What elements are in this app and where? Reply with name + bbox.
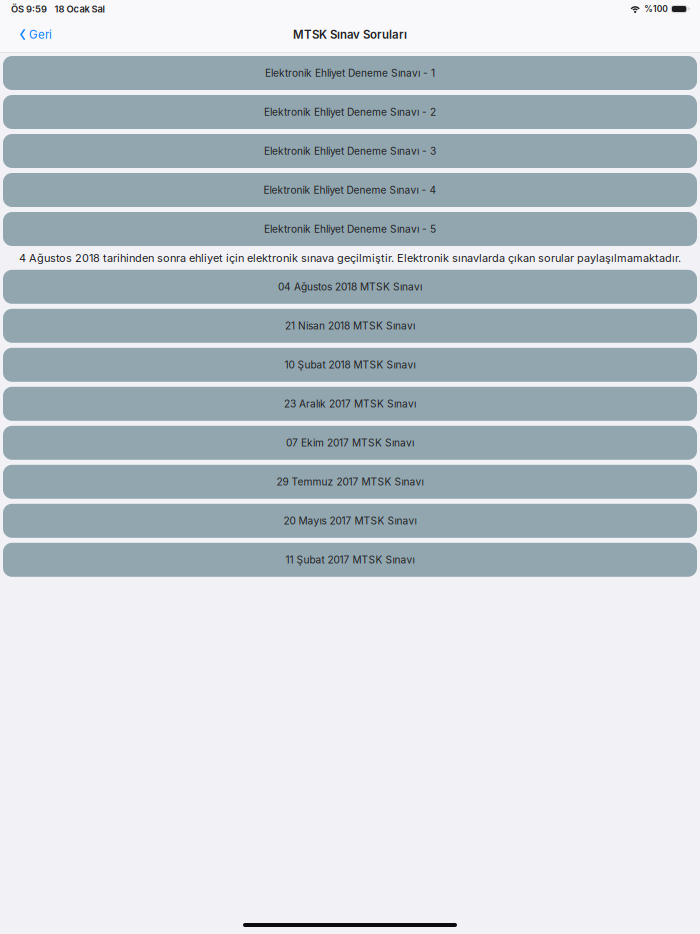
staticText: 18 Ocak Sal — [54, 3, 104, 15]
button[interactable]: 11 Şubat 2017 MTSK Sınavı — [3, 543, 697, 577]
button[interactable]: 21 Nisan 2018 MTSK Sınavı — [3, 309, 697, 343]
staticText: 21 Nisan 2018 MTSK Sınavı — [285, 320, 415, 332]
button[interactable]: Elektronik Ehliyet Deneme Sınavı - 5 — [3, 212, 697, 246]
button[interactable]: 29 Temmuz 2017 MTSK Sınavı — [3, 465, 697, 499]
button[interactable]: Geri — [10, 23, 62, 48]
staticText: %100 — [644, 4, 668, 14]
button[interactable]: Elektronik Ehliyet Deneme Sınavı - 1 — [3, 56, 697, 90]
button[interactable]: Elektronik Ehliyet Deneme Sınavı - 2 — [3, 95, 697, 129]
staticText: Elektronik Ehliyet Deneme Sınavı - 5 — [264, 223, 436, 235]
staticText: Elektronik Ehliyet Deneme Sınavı - 1 — [265, 67, 435, 79]
staticText: 10 Şubat 2018 MTSK Sınavı — [284, 359, 415, 371]
staticText: Elektronik Ehliyet Deneme Sınavı - 3 — [264, 145, 436, 157]
staticText: 11 Şubat 2017 MTSK Sınavı — [285, 554, 414, 566]
staticText: 23 Aralık 2017 MTSK Sınavı — [284, 398, 416, 410]
button[interactable]: 20 Mayıs 2017 MTSK Sınavı — [3, 504, 697, 538]
button[interactable]: 23 Aralık 2017 MTSK Sınavı — [3, 387, 697, 421]
staticText: 07 Ekim 2017 MTSK Sınavı — [286, 437, 414, 449]
staticText: 29 Temmuz 2017 MTSK Sınavı — [276, 476, 423, 488]
staticText: 20 Mayıs 2017 MTSK Sınavı — [283, 515, 416, 527]
button[interactable]: 10 Şubat 2018 MTSK Sınavı — [3, 348, 697, 382]
button[interactable]: 07 Ekim 2017 MTSK Sınavı — [3, 426, 697, 460]
button[interactable]: Elektronik Ehliyet Deneme Sınavı - 4 — [3, 173, 697, 207]
staticText: 4 Ağustos 2018 tarihinden sonra ehliyet … — [19, 251, 681, 264]
staticText: MTSK Sınav Soruları — [293, 28, 407, 41]
button[interactable]: Elektronik Ehliyet Deneme Sınavı - 3 — [3, 134, 697, 168]
staticText: 04 Ağustos 2018 MTSK Sınavı — [278, 281, 422, 293]
staticText: Elektronik Ehliyet Deneme Sınavı - 2 — [264, 106, 436, 118]
staticText: ÖS 9:59 — [11, 3, 47, 15]
staticText: Elektronik Ehliyet Deneme Sınavı - 4 — [263, 184, 436, 196]
button[interactable]: 04 Ağustos 2018 MTSK Sınavı — [3, 270, 697, 304]
staticText: Geri — [29, 28, 52, 41]
